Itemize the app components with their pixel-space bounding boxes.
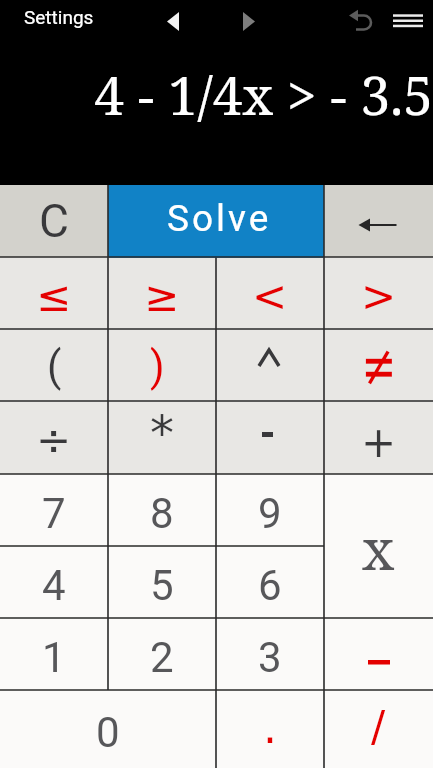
button[interactable]: x <box>324 474 433 618</box>
button[interactable] <box>234 6 266 38</box>
button[interactable]: Solve <box>108 185 324 257</box>
staticText: ≤ <box>36 272 72 321</box>
button[interactable]: 3 <box>216 618 324 690</box>
button[interactable] <box>388 6 428 36</box>
button[interactable]: 9 <box>216 474 324 546</box>
button[interactable]: . <box>216 690 324 768</box>
staticText: 4 - 1/4x > - 3.5 <box>0 58 433 130</box>
button[interactable] <box>216 401 324 474</box>
staticText: x <box>362 510 395 586</box>
button[interactable]: ( <box>0 329 108 401</box>
staticText: + <box>361 418 397 467</box>
staticText: ) <box>150 342 165 391</box>
button[interactable]: > <box>324 257 433 329</box>
staticText: C <box>39 194 69 248</box>
button[interactable]: ≠ <box>324 329 433 401</box>
staticText: > <box>361 272 397 321</box>
staticText: 3 <box>258 633 282 682</box>
staticText: 7 <box>42 489 66 538</box>
button[interactable]: C <box>0 185 108 257</box>
button[interactable]: ≤ <box>0 257 108 329</box>
button[interactable]: Settings <box>12 2 120 38</box>
button[interactable]: 2 <box>108 618 216 690</box>
button[interactable]: 1 <box>0 618 108 690</box>
button[interactable]: ) <box>108 329 216 401</box>
staticText: ( <box>47 342 62 391</box>
button[interactable]: 6 <box>216 546 324 618</box>
button[interactable]: + <box>324 401 433 474</box>
staticText: . <box>263 702 277 753</box>
staticText: 0 <box>96 708 120 757</box>
staticText: ÷ <box>36 415 72 464</box>
staticText: * <box>150 405 174 461</box>
button[interactable]: 8 <box>108 474 216 546</box>
button[interactable]: / <box>324 690 433 768</box>
staticText: ≥ <box>144 272 180 321</box>
staticText: 1 <box>42 633 66 682</box>
button[interactable]: ÷ <box>0 401 108 474</box>
staticText: 6 <box>258 561 282 610</box>
button[interactable] <box>158 6 190 38</box>
button[interactable]: < <box>216 257 324 329</box>
staticText: / <box>371 702 386 751</box>
button[interactable] <box>324 185 433 257</box>
staticText: ≠ <box>361 330 397 402</box>
button[interactable] <box>344 4 378 38</box>
staticText: 8 <box>150 489 174 538</box>
button[interactable]: 7 <box>0 474 108 546</box>
staticText: 9 <box>258 489 282 538</box>
staticText: < <box>252 272 288 321</box>
button[interactable] <box>324 618 433 690</box>
button[interactable]: 4 <box>0 546 108 618</box>
staticText: 2 <box>150 633 174 682</box>
button[interactable]: 5 <box>108 546 216 618</box>
button[interactable]: ≥ <box>108 257 216 329</box>
staticText: 4 <box>42 561 66 610</box>
staticText: Settings <box>24 6 94 28</box>
button[interactable]: * <box>108 401 216 474</box>
staticText: Solve <box>167 197 272 240</box>
staticText: 5 <box>150 561 174 610</box>
button[interactable] <box>216 329 324 401</box>
button[interactable]: 0 <box>0 690 216 768</box>
